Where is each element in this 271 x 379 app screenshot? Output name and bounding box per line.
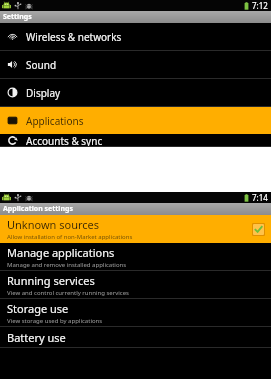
staticText: Applications	[26, 114, 84, 128]
staticText: Storage use	[7, 301, 69, 316]
staticText: 7:14	[252, 192, 268, 203]
staticText: Unknown sources	[7, 217, 100, 232]
button[interactable]: Wireless & networks	[0, 23, 271, 50]
button[interactable]: Unknown sources checkbox	[253, 224, 264, 235]
button[interactable]: Manage applications	[0, 243, 271, 270]
button[interactable]: Battery use	[0, 327, 271, 347]
staticText: Sound	[26, 58, 57, 72]
button[interactable]: Running services	[0, 271, 271, 298]
staticText: Manage and remove installed applications	[7, 261, 127, 269]
button[interactable]: Applications	[0, 107, 271, 134]
staticText: Accounts & sync	[26, 134, 103, 146]
button[interactable]: Storage use	[0, 299, 271, 326]
button[interactable]: Unknown sources	[0, 215, 271, 243]
button[interactable]: Display	[0, 79, 271, 106]
staticText: Manage applications	[7, 245, 115, 260]
staticText: View storage used by applications	[7, 317, 103, 325]
staticText: Running services	[7, 273, 95, 288]
staticText: Wireless & networks	[26, 30, 122, 44]
button[interactable]: Accounts & sync	[0, 134, 271, 146]
staticText: Allow installation of non-Market applica…	[7, 233, 133, 241]
staticText: Battery use	[7, 330, 66, 345]
staticText: 7:12	[252, 0, 268, 11]
button[interactable]: Sound	[0, 51, 271, 78]
staticText: Application settings	[3, 204, 73, 214]
staticText: Settings	[3, 12, 32, 22]
staticText: View and control currently running servi…	[7, 289, 129, 297]
staticText: Display	[26, 86, 61, 100]
